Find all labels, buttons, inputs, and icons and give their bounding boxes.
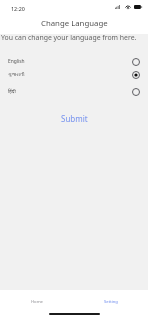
- button[interactable]: Submit: [0, 111, 148, 125]
- staticText: Submit: [61, 113, 88, 124]
- button[interactable]: ગુજરાતી: [0, 68, 148, 81]
- staticText: Setting: [104, 299, 118, 305]
- staticText: 12:20: [11, 5, 25, 12]
- staticText: You can change your language from here.: [1, 33, 137, 42]
- button[interactable]: Setting: [74, 290, 148, 313]
- staticText: हिंदी: [8, 88, 16, 95]
- button[interactable]: Home: [0, 290, 74, 313]
- staticText: English: [8, 58, 25, 65]
- staticText: ગુજરાતી: [8, 72, 25, 77]
- button[interactable]: English: [0, 55, 148, 68]
- button[interactable]: हिंदी: [0, 85, 148, 98]
- staticText: Home: [31, 299, 43, 305]
- staticText: Change Language: [41, 18, 108, 29]
